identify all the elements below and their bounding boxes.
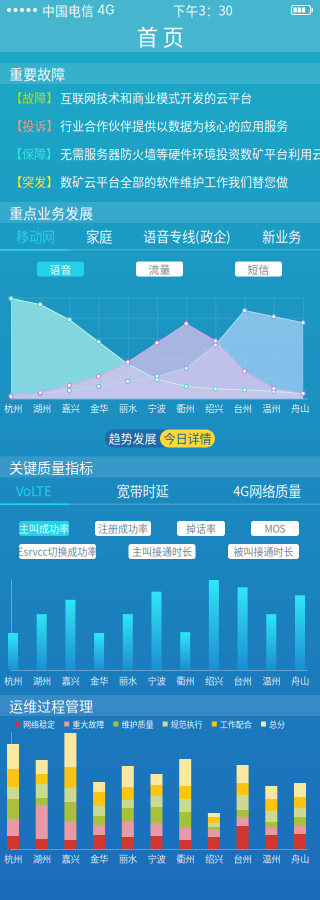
button[interactable]: 被叫接通时长 bbox=[228, 544, 299, 559]
staticText: 短信 bbox=[247, 261, 269, 277]
staticText: 衢州 bbox=[176, 674, 194, 687]
staticText: 宁波 bbox=[147, 852, 165, 865]
staticText: 主叫接通时长 bbox=[132, 544, 192, 559]
button[interactable]: 今日详情 bbox=[160, 429, 215, 447]
button[interactable]: 首 页 bbox=[0, 20, 320, 52]
staticText: 台州 bbox=[234, 674, 252, 687]
staticText: 规范执行 bbox=[171, 718, 203, 730]
staticText: 【故障】 bbox=[10, 89, 58, 107]
staticText: 舟山 bbox=[291, 852, 309, 865]
button[interactable]: 注册成功率 bbox=[95, 521, 151, 536]
staticText: 金华 bbox=[90, 852, 108, 865]
staticText: 被叫接通时长 bbox=[233, 544, 293, 559]
staticText: 丽水 bbox=[119, 674, 137, 687]
button[interactable]: 新业务 bbox=[262, 223, 301, 249]
staticText: 宁波 bbox=[147, 674, 165, 687]
staticText: 绍兴 bbox=[205, 674, 223, 687]
staticText: 今日详情 bbox=[163, 430, 211, 447]
staticText: 台州 bbox=[234, 401, 252, 415]
button[interactable]: 主叫成功率 bbox=[19, 521, 69, 536]
staticText: 嘉兴 bbox=[61, 674, 79, 687]
button[interactable]: 掉话率 bbox=[177, 521, 225, 536]
staticText: 新业务 bbox=[262, 226, 301, 246]
button[interactable]: 移动网 bbox=[16, 223, 55, 249]
staticText: 行业合作伙伴提供以数据为核心的应用服务 bbox=[60, 117, 288, 135]
button[interactable]: 主叫接通时长 bbox=[128, 544, 195, 559]
button[interactable]: MOS bbox=[251, 521, 299, 536]
staticText: 流量 bbox=[148, 261, 170, 277]
staticText: 宽带时延 bbox=[116, 481, 168, 500]
staticText: 4G bbox=[97, 2, 114, 18]
button[interactable]: 家庭 bbox=[86, 223, 112, 249]
staticText: 杭州 bbox=[4, 401, 22, 415]
staticText: 互联网技术和商业模式开发的云平台 bbox=[60, 89, 252, 107]
staticText: 衢州 bbox=[176, 401, 194, 415]
staticText: 家庭 bbox=[86, 226, 112, 246]
staticText: 注册成功率 bbox=[98, 521, 148, 536]
staticText: 杭州 bbox=[4, 852, 22, 865]
staticText: VoLTE bbox=[16, 481, 52, 500]
button[interactable]: Esrvcc切换成功率 bbox=[19, 544, 96, 559]
staticText: 工作配合 bbox=[220, 718, 252, 730]
staticText: 中国电信 bbox=[42, 1, 94, 19]
button[interactable]: 【突发】 bbox=[0, 168, 320, 196]
staticText: MOS bbox=[264, 521, 285, 536]
button[interactable]: 【故障】 bbox=[0, 84, 320, 112]
staticText: 重要故障 bbox=[9, 63, 65, 84]
staticText: 数矿云平台全部的软件维护工作我们替您做 bbox=[60, 173, 288, 191]
staticText: 网络稳定 bbox=[23, 718, 55, 730]
staticText: 台州 bbox=[234, 852, 252, 865]
staticText: 湖州 bbox=[33, 674, 51, 687]
staticText: 湖州 bbox=[33, 852, 51, 865]
staticText: 【保障】 bbox=[10, 145, 58, 163]
staticText: 首 页 bbox=[136, 21, 183, 51]
staticText: 重点业务发展 bbox=[9, 202, 93, 223]
staticText: 趋势发展 bbox=[108, 430, 156, 447]
staticText: Esrvcc切换成功率 bbox=[17, 544, 97, 559]
staticText: 语音专线(政企) bbox=[143, 226, 231, 246]
button[interactable]: 短信 bbox=[235, 261, 282, 276]
staticText: 嘉兴 bbox=[61, 852, 79, 865]
button[interactable]: 宽带时延 bbox=[116, 477, 168, 503]
staticText: 舟山 bbox=[291, 674, 309, 687]
button[interactable]: 4G网络质量 bbox=[233, 477, 301, 503]
staticText: 关键质量指标 bbox=[9, 457, 93, 477]
staticText: 4G网络质量 bbox=[233, 481, 301, 500]
staticText: 移动网 bbox=[16, 226, 55, 246]
staticText: 温州 bbox=[262, 674, 280, 687]
staticText: 重大故障 bbox=[72, 718, 104, 730]
staticText: 无需服务器防火墙等硬件环境投资数矿平台利用云平台模式 bbox=[60, 145, 320, 163]
button[interactable]: 语音 bbox=[37, 261, 84, 276]
staticText: 总分 bbox=[269, 718, 285, 730]
staticText: 温州 bbox=[262, 401, 280, 415]
staticText: 丽水 bbox=[119, 852, 137, 865]
button[interactable]: 趋势发展 bbox=[105, 429, 160, 447]
staticText: 维护质量 bbox=[121, 718, 153, 730]
staticText: 杭州 bbox=[4, 674, 22, 687]
staticText: 嘉兴 bbox=[61, 401, 79, 415]
button[interactable]: 语音专线(政企) bbox=[143, 223, 231, 249]
staticText: 绍兴 bbox=[205, 852, 223, 865]
staticText: 金华 bbox=[90, 401, 108, 415]
staticText: 宁波 bbox=[147, 401, 165, 415]
staticText: 掉话率 bbox=[186, 521, 216, 536]
staticText: 【突发】 bbox=[10, 173, 58, 191]
staticText: 【投诉】 bbox=[10, 117, 58, 135]
staticText: 丽水 bbox=[119, 401, 137, 415]
staticText: 主叫成功率 bbox=[19, 521, 69, 536]
button[interactable]: 流量 bbox=[136, 261, 183, 276]
staticText: 语音 bbox=[49, 261, 71, 277]
staticText: 运维过程管理 bbox=[9, 695, 93, 716]
button[interactable]: VoLTE bbox=[16, 477, 52, 503]
staticText: 下午3：30 bbox=[172, 1, 232, 19]
staticText: 衢州 bbox=[176, 852, 194, 865]
staticText: 湖州 bbox=[33, 401, 51, 415]
staticText: 舟山 bbox=[291, 401, 309, 415]
staticText: 温州 bbox=[262, 852, 280, 865]
staticText: 绍兴 bbox=[205, 401, 223, 415]
button[interactable]: 【保障】 bbox=[0, 140, 320, 168]
button[interactable]: 【投诉】 bbox=[0, 112, 320, 140]
staticText: 金华 bbox=[90, 674, 108, 687]
